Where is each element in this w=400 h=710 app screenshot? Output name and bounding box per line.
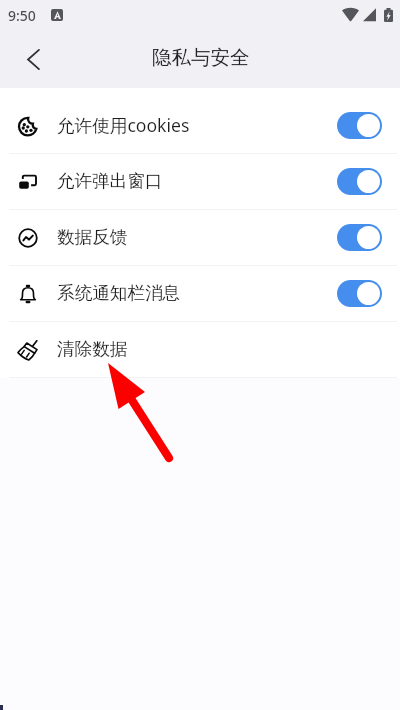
button[interactable]: Toggle	[337, 112, 382, 139]
staticText: 清除数据	[57, 338, 128, 360]
button[interactable]: 允许弹出窗口	[0, 154, 400, 209]
button[interactable]: 清除数据	[0, 322, 400, 377]
staticText: 数据反馈	[57, 226, 128, 248]
staticText: 系统通知栏消息	[57, 282, 181, 304]
button[interactable]: 系统通知栏消息	[0, 266, 400, 321]
staticText: 隐私与安全	[152, 45, 250, 70]
button[interactable]: 允许使用cookies	[0, 98, 400, 153]
staticText: 允许弹出窗口	[57, 170, 163, 192]
staticText: 允许使用cookies	[57, 113, 190, 137]
button[interactable]: Toggle	[337, 280, 382, 307]
button[interactable]: Back	[11, 37, 55, 81]
staticText: 9:50	[8, 6, 36, 25]
button[interactable]: Toggle	[337, 168, 382, 195]
button[interactable]: 数据反馈	[0, 210, 400, 265]
button[interactable]: Toggle	[337, 224, 382, 251]
